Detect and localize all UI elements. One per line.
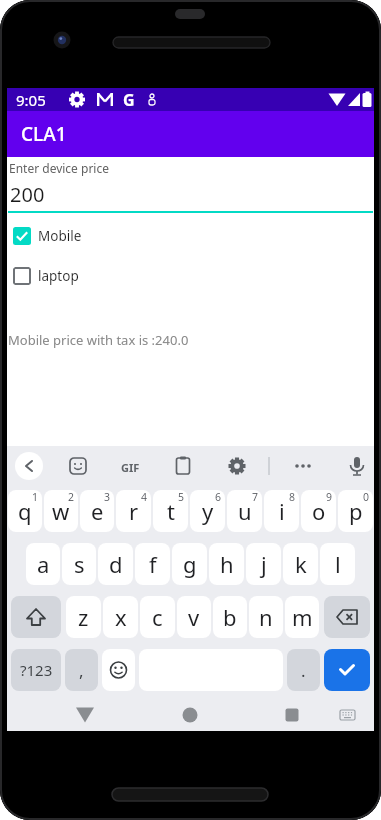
staticText: Enter device price (9, 160, 109, 176)
button[interactable]: laptop (13, 267, 79, 285)
button[interactable] (172, 448, 208, 484)
button[interactable] (117, 448, 153, 484)
staticText: ?123 (20, 660, 53, 680)
staticText: q (18, 496, 32, 526)
button[interactable]: p (338, 490, 373, 532)
staticText: p (349, 496, 363, 526)
button[interactable] (11, 596, 61, 638)
staticText: 9:05 (16, 90, 46, 110)
button[interactable]: x (103, 596, 138, 638)
staticText: 1 (32, 490, 39, 504)
button[interactable] (272, 695, 312, 735)
button[interactable] (102, 649, 135, 691)
button[interactable]: 200 (7, 176, 374, 208)
staticText: v (188, 602, 200, 632)
button[interactable]: Mobile (13, 227, 82, 245)
button[interactable]: l (320, 543, 355, 585)
staticText: l (335, 549, 341, 579)
button[interactable]: k (283, 543, 318, 585)
staticText: 2 (68, 490, 75, 504)
staticText: . (301, 659, 306, 682)
button[interactable]: j (246, 543, 281, 585)
button[interactable]: v (177, 596, 211, 638)
button[interactable]: n (249, 596, 283, 638)
staticText: f (149, 549, 157, 579)
button[interactable] (339, 448, 375, 484)
button[interactable]: u (227, 490, 262, 532)
button[interactable]: , (65, 649, 98, 691)
staticText: s (74, 549, 85, 579)
staticText: a (37, 549, 50, 579)
staticText: laptop (38, 267, 79, 285)
staticText: m (292, 602, 313, 632)
button[interactable] (65, 695, 105, 735)
button[interactable]: m (285, 596, 319, 638)
button[interactable]: ?123 (11, 649, 61, 691)
button[interactable]: z (66, 596, 101, 638)
button[interactable]: . (287, 649, 320, 691)
button[interactable]: a (26, 543, 60, 585)
button[interactable]: b (213, 596, 247, 638)
staticText: y (202, 496, 214, 526)
staticText: 8 (289, 490, 296, 504)
staticText: u (238, 496, 252, 526)
staticText: n (259, 602, 273, 632)
button[interactable] (60, 448, 96, 484)
button[interactable]: w (44, 490, 78, 532)
button[interactable] (324, 649, 370, 691)
staticText: c (152, 602, 163, 632)
staticText: w (52, 496, 70, 526)
staticText: 5 (178, 490, 185, 504)
button[interactable] (285, 448, 321, 484)
staticText: GIF (121, 460, 140, 475)
staticText: r (129, 496, 139, 526)
staticText: , (79, 659, 84, 682)
staticText: 200 (10, 181, 45, 208)
button[interactable]: e (80, 490, 114, 532)
staticText: j (261, 549, 267, 579)
staticText: 7 (252, 490, 259, 504)
button[interactable] (327, 695, 367, 735)
button[interactable]: q (8, 490, 42, 532)
staticText: o (312, 496, 326, 526)
button[interactable]: d (98, 543, 133, 585)
button[interactable]: i (264, 490, 299, 532)
staticText: d (109, 549, 123, 579)
staticText: 0 (363, 490, 370, 504)
staticText: e (91, 496, 104, 526)
button[interactable] (170, 695, 210, 735)
staticText: t (167, 496, 175, 526)
staticText: b (223, 602, 237, 632)
staticText: 4 (141, 490, 148, 504)
staticText: g (183, 549, 197, 579)
staticText: Mobile (38, 227, 82, 245)
staticText: G (123, 89, 135, 111)
staticText: x (115, 602, 127, 632)
staticText: 3 (104, 490, 111, 504)
staticText: 9 (326, 490, 333, 504)
button[interactable]: s (62, 543, 96, 585)
staticText: k (295, 549, 307, 579)
button[interactable]: y (190, 490, 225, 532)
button[interactable]: h (209, 543, 244, 585)
staticText: z (78, 602, 89, 632)
staticText: Mobile price with tax is :240.0 (8, 331, 189, 349)
button[interactable]: g (172, 543, 207, 585)
staticText: 6 (215, 490, 222, 504)
staticText: CLA1 (21, 121, 67, 147)
button[interactable]: t (153, 490, 188, 532)
staticText: h (220, 549, 234, 579)
button[interactable]: o (301, 490, 336, 532)
button[interactable]: r (116, 490, 151, 532)
button[interactable] (11, 448, 47, 484)
staticText: i (279, 496, 285, 526)
button[interactable]: f (135, 543, 170, 585)
button[interactable]: c (140, 596, 175, 638)
button[interactable] (324, 596, 370, 638)
button[interactable] (219, 448, 255, 484)
